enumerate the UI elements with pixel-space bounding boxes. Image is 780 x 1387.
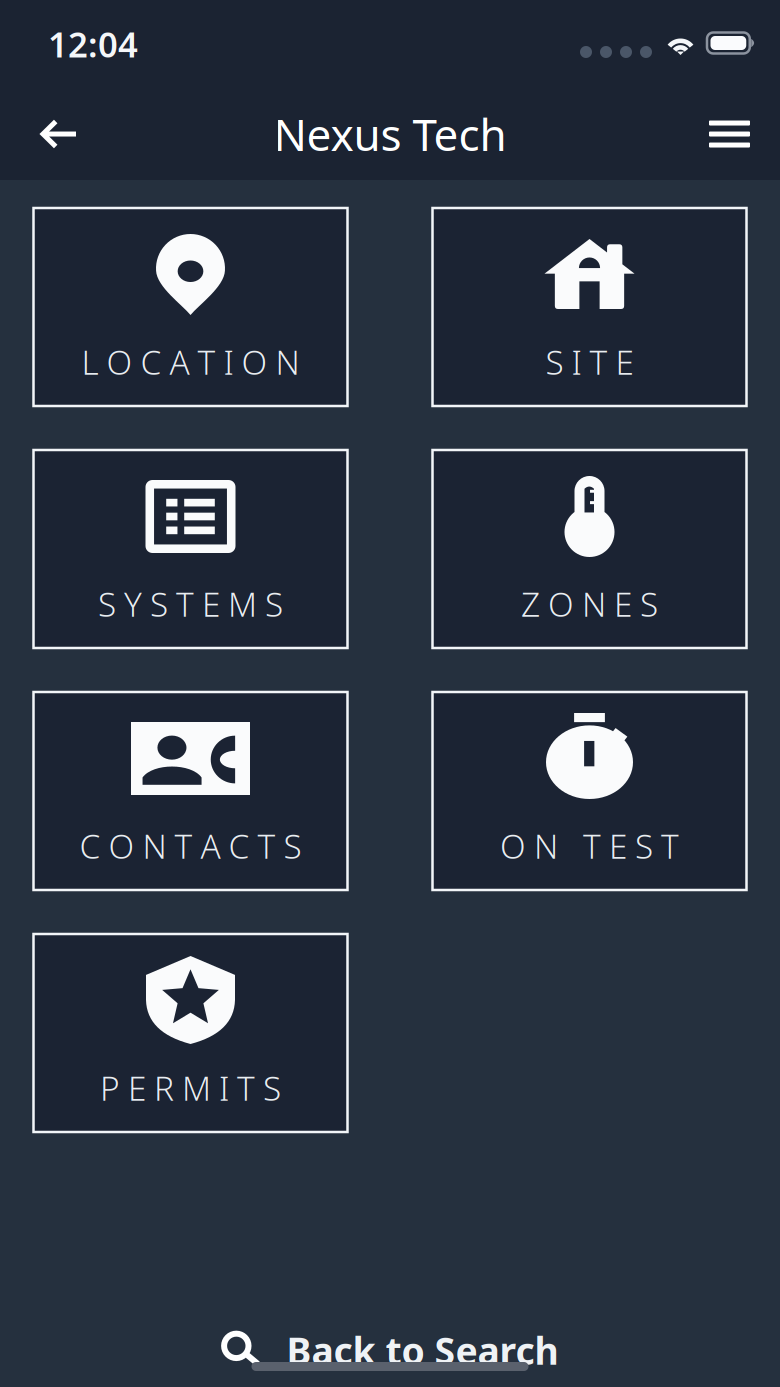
staticText: S I T E [545,340,633,384]
button[interactable]: Menu [684,88,766,180]
staticText: Z O N E S [521,582,658,626]
button[interactable]: Back [14,88,103,179]
staticText: C O N T A C T S [79,824,301,868]
button[interactable]: Back to Search [0,1309,780,1387]
staticText: Nexus Tech [273,105,506,163]
button[interactable]: L O C A T I O N [33,208,347,406]
button[interactable]: C O N T A C T S [33,692,347,890]
button[interactable]: O N T E S T [432,692,746,890]
staticText: S Y S T E M S [98,582,283,626]
staticText: P E R M I T S [100,1066,281,1110]
staticText: 12:04 [48,21,138,67]
staticText: Back to Search [286,1325,558,1375]
button[interactable]: Z O N E S [432,450,746,648]
staticText: L O C A T I O N [81,340,299,384]
button[interactable]: S Y S T E M S [33,450,347,648]
button[interactable]: S I T E [432,208,746,406]
staticText: O N T E S T [500,824,679,868]
button[interactable]: P E R M I T S [33,934,347,1132]
